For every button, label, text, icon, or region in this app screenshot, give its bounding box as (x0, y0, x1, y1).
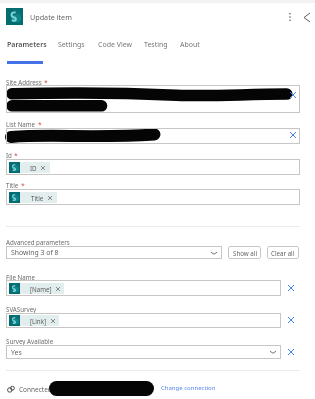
button[interactable]: Showing 3 of 8 (6, 246, 222, 259)
button[interactable]: Yes (6, 345, 281, 359)
button[interactable]: Code View (98, 40, 133, 63)
staticText: Change connection (161, 384, 216, 392)
staticText: About (180, 40, 200, 50)
button[interactable]: Clear field (288, 130, 297, 139)
button[interactable]: Clear all (267, 246, 299, 259)
button[interactable]: Change connection (161, 384, 216, 392)
staticText: Parameters (7, 40, 47, 50)
staticText: Code View (98, 40, 133, 50)
staticText: Showing 3 of 8 (11, 248, 59, 257)
staticText: * (38, 120, 42, 129)
button[interactable]: About (180, 40, 200, 63)
staticText: Settings (58, 40, 85, 50)
button[interactable]: Testing (144, 40, 168, 63)
button[interactable]: Clear field (286, 283, 295, 292)
staticText: Testing (144, 40, 168, 50)
staticText: Connected (19, 385, 52, 394)
staticText: [Link] (30, 317, 47, 325)
staticText: Clear all (271, 249, 295, 257)
button[interactable]: [Link] (6, 313, 281, 328)
staticText: List Name (6, 120, 36, 128)
staticText: SVASurvey (6, 305, 37, 313)
button[interactable]: Settings (58, 40, 85, 63)
staticText: ID (30, 164, 37, 172)
staticText: Id (6, 151, 12, 159)
staticText: Advanced parameters (6, 238, 70, 246)
staticText: * (14, 151, 18, 160)
staticText: Title (6, 181, 19, 189)
button[interactable]: Parameters (7, 40, 47, 63)
staticText: Title (31, 194, 44, 202)
button[interactable]: Collapse (298, 6, 315, 28)
staticText: Yes (11, 348, 22, 357)
staticText: Survey Available (6, 337, 54, 345)
button[interactable]: Clear field (286, 315, 295, 324)
staticText: Show all (233, 249, 257, 257)
button[interactable]: Clear field (288, 90, 297, 99)
button[interactable]: ID (6, 159, 300, 175)
button[interactable]: Show all (228, 246, 261, 259)
button[interactable]: Clear field (286, 347, 295, 356)
button[interactable] (6, 128, 300, 144)
staticText: Site Address (6, 78, 42, 86)
staticText: Update item (30, 12, 72, 22)
staticText: File Name (6, 273, 35, 281)
button[interactable]: [Name] (6, 280, 281, 296)
staticText: * (44, 78, 48, 87)
staticText: [Name] (30, 285, 52, 293)
button[interactable] (6, 85, 300, 113)
staticText: * (21, 181, 25, 190)
button[interactable]: More options (281, 6, 298, 28)
button[interactable]: Title (6, 189, 300, 205)
